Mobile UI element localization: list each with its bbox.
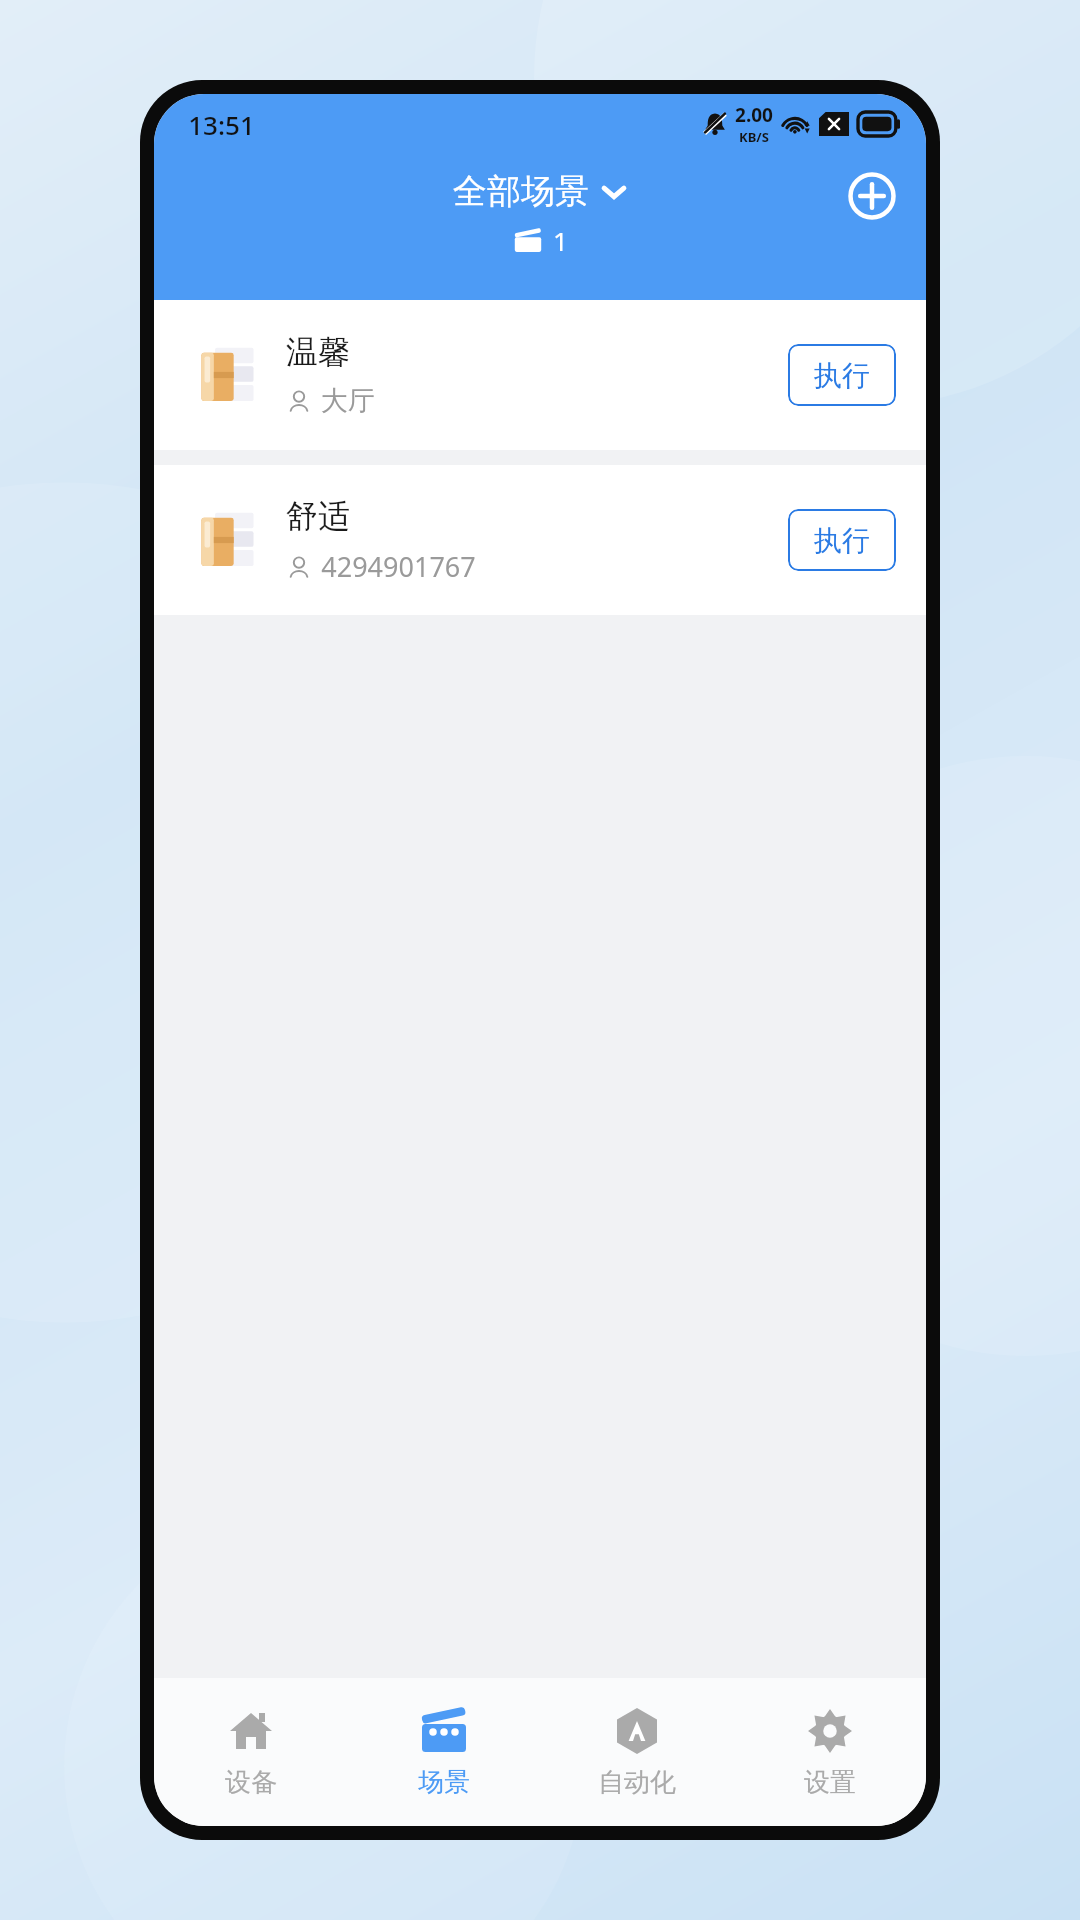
staticText: 13:51: [188, 107, 255, 142]
button[interactable]: 场景: [347, 1678, 540, 1826]
staticText: KB/S: [739, 128, 769, 146]
staticText: 舒适: [286, 496, 350, 536]
staticText: 设备: [225, 1766, 277, 1799]
button[interactable]: 温馨: [154, 300, 926, 450]
button[interactable]: 执行: [788, 509, 896, 571]
button[interactable]: Add scene: [840, 164, 904, 228]
staticText: 1: [553, 223, 568, 258]
button[interactable]: 设备: [154, 1678, 347, 1826]
button[interactable]: 自动化: [540, 1678, 733, 1826]
staticText: 执行: [814, 523, 870, 558]
staticText: 场景: [418, 1766, 470, 1799]
staticText: 设置: [804, 1766, 856, 1799]
staticText: 执行: [814, 358, 870, 393]
staticText: 2.00: [735, 102, 773, 128]
staticText: 温馨: [286, 332, 350, 372]
button[interactable]: 执行: [788, 344, 896, 406]
staticText: 大厅: [321, 384, 375, 418]
staticText: 全部场景: [453, 170, 589, 213]
staticText: 4294901767: [321, 548, 476, 585]
button[interactable]: 舒适: [154, 465, 926, 615]
button[interactable]: 全部场景: [443, 166, 637, 217]
button[interactable]: 设置: [733, 1678, 926, 1826]
staticText: 自动化: [598, 1766, 676, 1799]
